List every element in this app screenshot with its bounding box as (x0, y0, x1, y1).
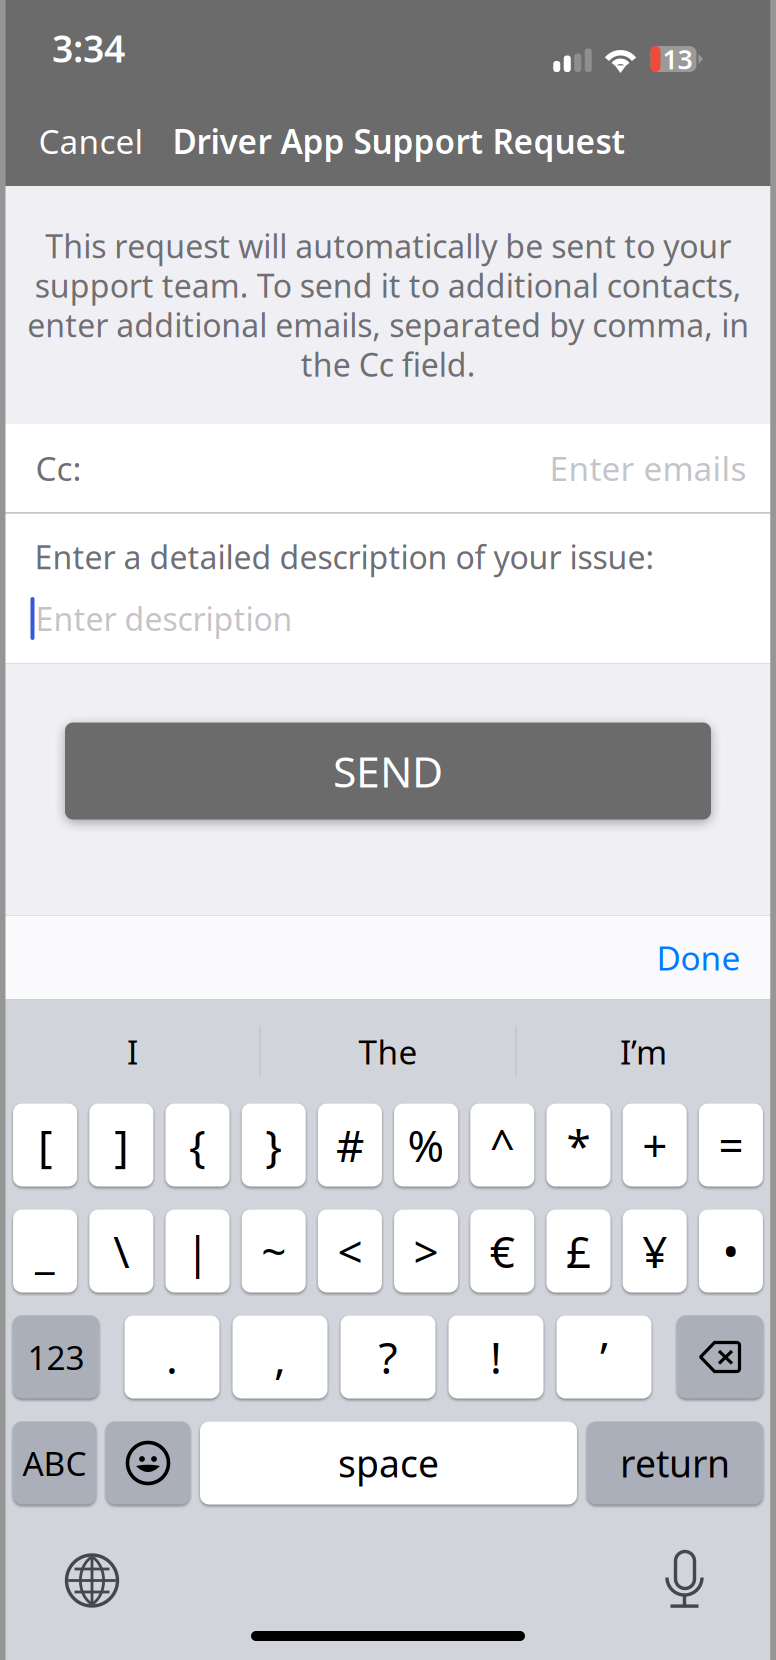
staticText: > (414, 1222, 439, 1280)
button[interactable]: Done (656, 915, 770, 999)
staticText: | (185, 1222, 209, 1280)
staticText: { (189, 1116, 206, 1174)
button[interactable]: Dictation (666, 1551, 704, 1609)
button[interactable]: space (200, 1421, 577, 1504)
staticText: ? (378, 1328, 397, 1386)
staticText: # (336, 1116, 364, 1174)
button[interactable]: Cc: (5, 424, 770, 512)
button[interactable]: > (394, 1209, 458, 1292)
staticText: Enter description (35, 597, 292, 640)
button[interactable]: Enter a detailed description of your iss… (5, 513, 770, 663)
button[interactable]: Driver App Support Request (172, 96, 625, 186)
staticText: 123 (27, 1335, 84, 1379)
staticText: < (337, 1222, 362, 1280)
button[interactable]: = (699, 1103, 763, 1186)
staticText: ] (114, 1116, 128, 1174)
staticText: £ (566, 1222, 591, 1280)
staticText: Enter emails (549, 446, 746, 490)
button[interactable]: , (232, 1315, 327, 1398)
staticText: ABC (22, 1441, 86, 1485)
button[interactable]: € (470, 1209, 534, 1292)
button[interactable]: ~ (242, 1209, 306, 1292)
staticText: € (490, 1222, 515, 1280)
staticText: [ (38, 1116, 52, 1174)
button[interactable]: # (318, 1103, 382, 1186)
staticText: 13 (662, 41, 692, 77)
button[interactable]: { (165, 1103, 229, 1186)
staticText: } (265, 1116, 282, 1174)
staticText: return (620, 1438, 730, 1488)
staticText: ^ (490, 1116, 515, 1174)
button[interactable]: ¥ (623, 1209, 687, 1292)
button[interactable]: . (124, 1315, 219, 1398)
staticText: Cc: (35, 446, 81, 490)
button[interactable]: + (623, 1103, 687, 1186)
staticText: The (358, 1029, 417, 1074)
button[interactable]: Emoji (106, 1421, 190, 1504)
staticText: ! (490, 1328, 502, 1386)
staticText: space (338, 1438, 439, 1488)
button[interactable]: \ (89, 1209, 153, 1292)
staticText: Driver App Support Request (172, 119, 625, 163)
button[interactable]: I (5, 999, 259, 1103)
button[interactable]: [ (13, 1103, 77, 1186)
button[interactable]: • (699, 1209, 763, 1292)
staticText: , (274, 1328, 286, 1386)
staticText: % (408, 1116, 445, 1174)
button[interactable]: I’m (517, 999, 770, 1103)
button[interactable]: ] (89, 1103, 153, 1186)
button[interactable]: Delete (677, 1315, 763, 1398)
staticText: 3:34 (52, 23, 125, 73)
button[interactable]: return (587, 1421, 763, 1504)
button[interactable]: SEND (65, 722, 711, 819)
button[interactable]: Cancel (5, 96, 172, 186)
button[interactable]: The (261, 999, 515, 1103)
staticText: \ (113, 1222, 129, 1280)
button[interactable]: } (242, 1103, 306, 1186)
button[interactable]: _ (13, 1209, 77, 1292)
staticText: I (127, 1029, 138, 1074)
button[interactable]: 123 (13, 1315, 99, 1398)
button[interactable]: ’ (556, 1315, 651, 1398)
staticText: * (566, 1116, 590, 1174)
button[interactable]: * (546, 1103, 610, 1186)
button[interactable]: % (394, 1103, 458, 1186)
staticText: SEND (333, 743, 443, 799)
button[interactable]: < (318, 1209, 382, 1292)
staticText: ¥ (642, 1222, 667, 1280)
button[interactable]: ! (448, 1315, 543, 1398)
button[interactable]: ? (340, 1315, 435, 1398)
staticText: Enter a detailed description of your iss… (34, 535, 654, 578)
button[interactable]: £ (546, 1209, 610, 1292)
button[interactable]: Switch keyboard (65, 1553, 119, 1607)
staticText: Done (656, 935, 740, 980)
staticText: This request will automatically be sent … (27, 224, 749, 385)
button[interactable]: | (165, 1209, 229, 1292)
button[interactable]: ABC (13, 1421, 96, 1504)
staticText: Cancel (38, 119, 143, 163)
staticText: ’ (600, 1328, 608, 1386)
staticText: I’m (620, 1029, 667, 1074)
staticText: + (642, 1116, 667, 1174)
staticText: . (166, 1328, 178, 1386)
staticText: = (718, 1116, 743, 1174)
staticText: _ (35, 1222, 55, 1280)
button[interactable]: ^ (470, 1103, 534, 1186)
staticText: ~ (261, 1222, 286, 1280)
staticText: • (722, 1222, 739, 1280)
